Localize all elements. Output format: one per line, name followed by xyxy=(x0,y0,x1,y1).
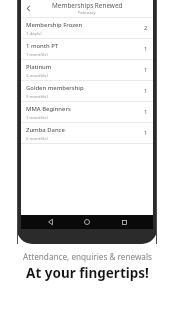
staticText: Platinum xyxy=(26,63,52,71)
button[interactable]: 1 month PT xyxy=(21,39,153,59)
staticText: 1 day(s) xyxy=(26,30,42,36)
staticText: 3 month(s) xyxy=(26,93,48,99)
button[interactable]: Back xyxy=(44,215,58,229)
staticText: 2 month(s) xyxy=(26,135,48,141)
button[interactable]: Membership Frozen xyxy=(21,18,153,38)
staticText: 2 xyxy=(144,24,148,32)
staticText: 1 month PT xyxy=(26,42,59,50)
staticText: Attendance, enquiries & renewals xyxy=(23,251,152,262)
staticText: 1 xyxy=(144,87,148,95)
button[interactable]: Platinum xyxy=(21,60,153,80)
staticText: 1 xyxy=(144,45,148,53)
button[interactable]: Back xyxy=(22,2,35,15)
staticText: February xyxy=(78,10,96,16)
staticText: Memberships Renewed xyxy=(52,1,123,10)
staticText: 1 month(s) xyxy=(26,114,48,120)
button[interactable]: Home xyxy=(80,215,94,229)
staticText: Golden membership xyxy=(26,84,84,92)
button[interactable]: Golden membership xyxy=(21,81,153,101)
staticText: At your fingertips! xyxy=(26,264,149,282)
staticText: MMA Beginners xyxy=(26,105,71,113)
staticText: 1 xyxy=(144,66,148,74)
button[interactable]: MMA Beginners xyxy=(21,102,153,122)
staticText: 1 xyxy=(144,108,148,116)
staticText: Zumba Dance xyxy=(26,126,65,134)
staticText: 1 xyxy=(144,129,148,137)
staticText: 2 month(s) xyxy=(26,72,48,78)
staticText: Membership Frozen xyxy=(26,21,83,29)
button[interactable]: Zumba Dance xyxy=(21,123,153,143)
staticText: 1 month(s) xyxy=(26,51,48,57)
button[interactable]: Recents xyxy=(117,215,131,229)
